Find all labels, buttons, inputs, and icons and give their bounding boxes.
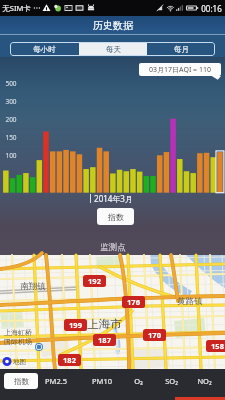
staticText: 历史数据	[93, 19, 133, 32]
staticText: SO₂	[165, 376, 178, 386]
button[interactable]: 192	[83, 275, 106, 287]
staticText: 03月17日AQI = 110	[149, 65, 211, 75]
staticText: 南翔镇	[20, 281, 46, 292]
button[interactable]: SO₂	[153, 371, 189, 391]
button[interactable]: 每月	[147, 42, 215, 56]
button[interactable]: 158	[206, 340, 225, 352]
staticText: 00:16	[201, 3, 222, 14]
staticText: 每小时	[33, 45, 56, 54]
staticText: 170	[148, 330, 161, 340]
button[interactable]: 指数	[97, 208, 134, 225]
button[interactable]: 指数	[4, 373, 38, 389]
button[interactable]: O₃	[120, 371, 156, 391]
staticText: 上海虹桥	[4, 328, 32, 337]
staticText: 指数	[14, 377, 29, 386]
button[interactable]: 每天	[79, 42, 147, 56]
staticText: 187	[98, 335, 111, 345]
staticText: 黄路镇	[177, 296, 203, 307]
button[interactable]: 187	[93, 334, 116, 346]
staticText: NO₂	[197, 376, 212, 386]
staticText: 200	[5, 115, 17, 124]
button[interactable]: 每小时	[10, 42, 79, 56]
staticText: 2014年3月	[94, 193, 133, 204]
button[interactable]: PM10	[84, 371, 120, 391]
staticText: 192	[88, 276, 101, 286]
staticText: 上海市	[87, 317, 122, 331]
staticText: 176	[127, 297, 140, 307]
staticText: PM10	[92, 376, 112, 386]
staticText: 300	[5, 97, 17, 106]
staticText: 500	[5, 79, 17, 88]
staticText: 监测点	[100, 242, 126, 253]
staticText: 每月	[174, 45, 189, 54]
button[interactable]: 182	[58, 354, 81, 366]
staticText: 国际机场	[4, 337, 32, 346]
staticText: 每天	[106, 45, 121, 54]
staticText: PM2.5	[45, 376, 67, 386]
staticText: 指数	[108, 212, 124, 222]
staticText: 158	[211, 341, 224, 351]
staticText: 无SIM卡	[2, 3, 31, 13]
staticText: 199	[69, 320, 82, 330]
button[interactable]: 199	[64, 319, 87, 331]
button[interactable]: NO₂	[186, 371, 222, 391]
staticText: O₃	[134, 376, 143, 386]
staticText: 地图	[13, 358, 26, 366]
staticText: 182	[63, 355, 76, 365]
staticText: 100	[5, 151, 17, 160]
button[interactable]: 176	[122, 296, 145, 308]
staticText: 150	[5, 133, 17, 142]
button[interactable]: 170	[143, 329, 166, 341]
button[interactable]: PM2.5	[38, 371, 74, 391]
